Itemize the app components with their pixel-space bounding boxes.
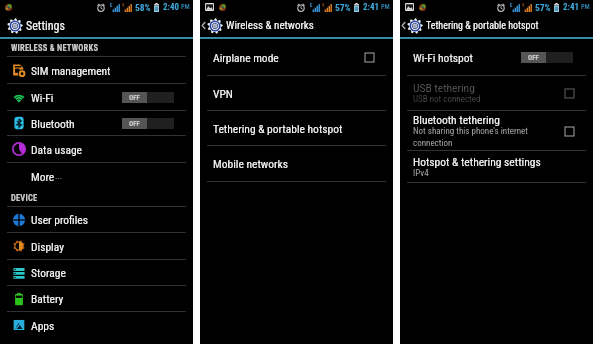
- staticText: OFF: [528, 54, 539, 62]
- staticText: PM: [381, 3, 390, 11]
- button[interactable]: [559, 121, 579, 141]
- button[interactable]: Bluetooth: [0, 111, 193, 135]
- other: Back: [401, 20, 406, 31]
- staticText: USB not connected: [413, 94, 481, 105]
- button[interactable]: Back: [200, 14, 314, 37]
- staticText: 57%: [335, 2, 351, 13]
- button[interactable]: OFF: [521, 52, 573, 63]
- staticText: Wi-Fi: [31, 91, 54, 104]
- button[interactable]: Airplane mode: [200, 39, 393, 75]
- staticText: OFF: [129, 120, 140, 128]
- button[interactable]: Settings: [0, 14, 65, 37]
- button[interactable]: Wi-Fi: [0, 84, 193, 110]
- staticText: PM: [181, 3, 190, 11]
- button[interactable]: Back: [400, 14, 539, 37]
- staticText: 58%: [135, 2, 151, 13]
- staticText: Wireless & networks: [226, 19, 314, 32]
- staticText: Bluetooth: [31, 117, 75, 130]
- staticText: Tethering & portable hotspot: [426, 20, 539, 32]
- button[interactable]: Apps: [0, 312, 193, 338]
- button[interactable]: OFF: [122, 92, 174, 103]
- staticText: DEVICE: [11, 193, 38, 203]
- staticText: IPv4: [413, 168, 429, 179]
- staticText: More: [31, 170, 55, 183]
- staticText: User profiles: [31, 213, 88, 226]
- other: Back: [201, 20, 206, 31]
- staticText: 57%: [535, 2, 551, 13]
- staticText: OFF: [129, 94, 140, 102]
- staticText: 2:40: [163, 2, 180, 13]
- button[interactable]: [359, 47, 379, 67]
- button[interactable]: SIM management: [0, 57, 193, 83]
- staticText: Bluetooth tethering: [413, 113, 500, 126]
- button[interactable]: Mobile networks: [200, 146, 393, 181]
- button[interactable]: Wi-Fi hotspot: [400, 39, 593, 75]
- button[interactable]: [559, 83, 579, 103]
- staticText: WIRELESS & NETWORKS: [11, 43, 99, 53]
- staticText: Storage: [31, 266, 66, 279]
- staticText: Mobile networks: [213, 157, 288, 170]
- staticText: Hotspot & tethering settings: [413, 155, 541, 168]
- button[interactable]: Hotspot & tethering settings: [400, 151, 593, 182]
- staticText: Tethering & portable hotspot: [213, 122, 343, 135]
- staticText: Data usage: [31, 143, 82, 156]
- staticText: USB tethering: [413, 81, 475, 94]
- staticText: SIM management: [31, 64, 111, 77]
- staticText: 2:41: [563, 2, 580, 13]
- button[interactable]: Data usage: [0, 136, 193, 162]
- staticText: Display: [31, 240, 64, 253]
- button[interactable]: Display: [0, 233, 193, 259]
- button[interactable]: OFF: [122, 118, 174, 129]
- staticText: Apps: [31, 319, 55, 332]
- button[interactable]: USB tethering: [400, 76, 593, 110]
- staticText: Not sharing this phone's internet connec…: [413, 126, 551, 148]
- staticText: PM: [581, 3, 590, 11]
- staticText: Settings: [26, 19, 65, 33]
- button[interactable]: Storage: [0, 260, 193, 285]
- button[interactable]: Tethering & portable hotspot: [200, 111, 393, 145]
- staticText: ...: [55, 171, 63, 182]
- staticText: 2:41: [363, 2, 380, 13]
- button[interactable]: Battery: [0, 286, 193, 311]
- button[interactable]: User profiles: [0, 207, 193, 232]
- button[interactable]: More: [0, 163, 193, 189]
- staticText: Wi-Fi hotspot: [413, 51, 473, 64]
- button[interactable]: VPN: [200, 76, 393, 110]
- staticText: VPN: [213, 87, 233, 100]
- button[interactable]: Bluetooth tethering: [400, 111, 593, 150]
- staticText: Airplane mode: [213, 51, 279, 64]
- staticText: Battery: [31, 292, 64, 305]
